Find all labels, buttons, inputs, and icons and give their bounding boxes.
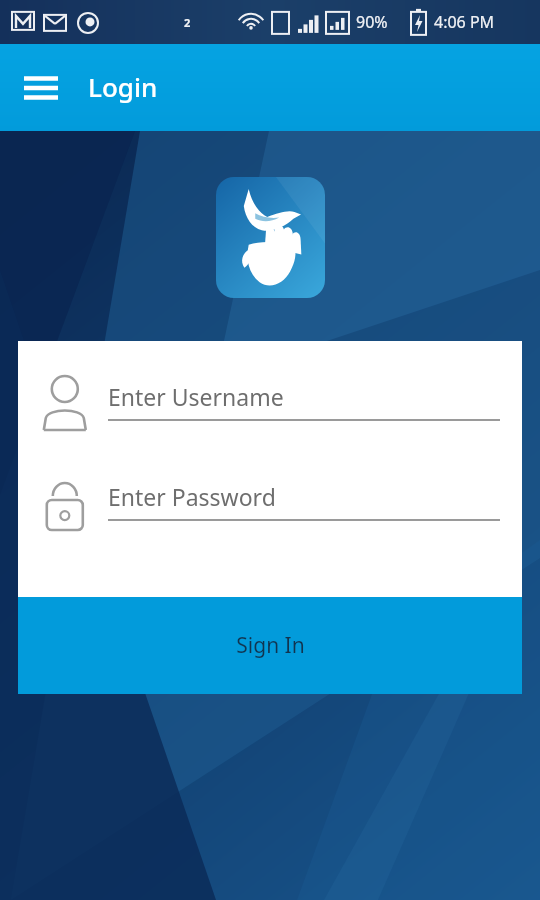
- button[interactable]: Enter Password: [18, 473, 522, 535]
- button[interactable]: Open navigation menu: [18, 65, 64, 111]
- staticText: Login: [88, 69, 158, 104]
- staticText: 2: [184, 15, 191, 30]
- staticText: Enter Username: [108, 381, 284, 412]
- button[interactable]: Enter Username: [18, 373, 522, 435]
- staticText: 4:06 PM: [434, 11, 495, 33]
- button[interactable]: Sign In: [18, 597, 522, 694]
- staticText: Sign In: [236, 631, 305, 660]
- staticText: Enter Password: [108, 481, 276, 512]
- staticText: 90%: [356, 11, 388, 33]
